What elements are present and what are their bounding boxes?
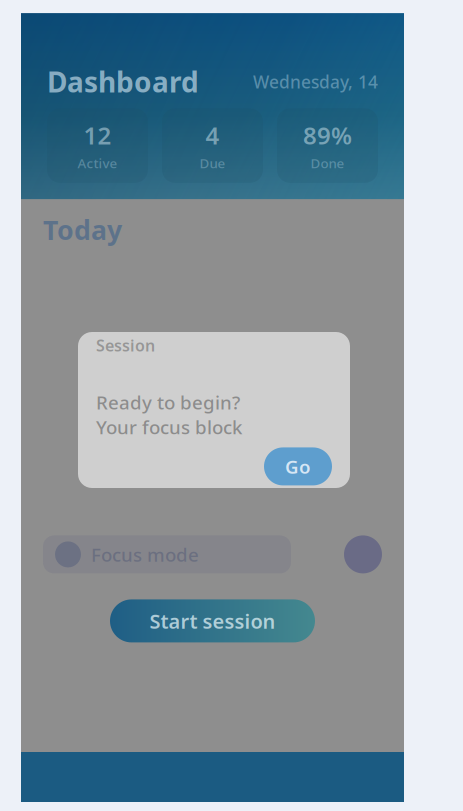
staticText: Start session xyxy=(149,608,275,634)
button[interactable]: More options xyxy=(344,535,382,573)
staticText: Dashboard xyxy=(47,63,199,100)
staticText: 4 xyxy=(205,119,219,151)
staticText: 89% xyxy=(303,119,352,151)
staticText: Wednesday, 14 xyxy=(253,70,378,93)
button[interactable]: Go xyxy=(264,447,332,485)
staticText: Focus mode xyxy=(91,542,199,567)
button[interactable]: Focus mode xyxy=(43,535,291,573)
staticText: Session xyxy=(96,335,155,356)
staticText: Today xyxy=(43,212,122,247)
staticText: Go xyxy=(285,454,311,479)
button[interactable]: Start session xyxy=(110,599,315,642)
staticText: Due xyxy=(199,154,225,172)
button[interactable]: 89% xyxy=(277,108,378,183)
staticText: Active xyxy=(77,154,117,172)
staticText: Done xyxy=(310,154,344,172)
button[interactable]: 12 xyxy=(47,108,148,183)
staticText: Ready to begin? Your focus block xyxy=(96,390,242,439)
button[interactable]: 4 xyxy=(162,108,263,183)
staticText: 12 xyxy=(83,119,111,151)
